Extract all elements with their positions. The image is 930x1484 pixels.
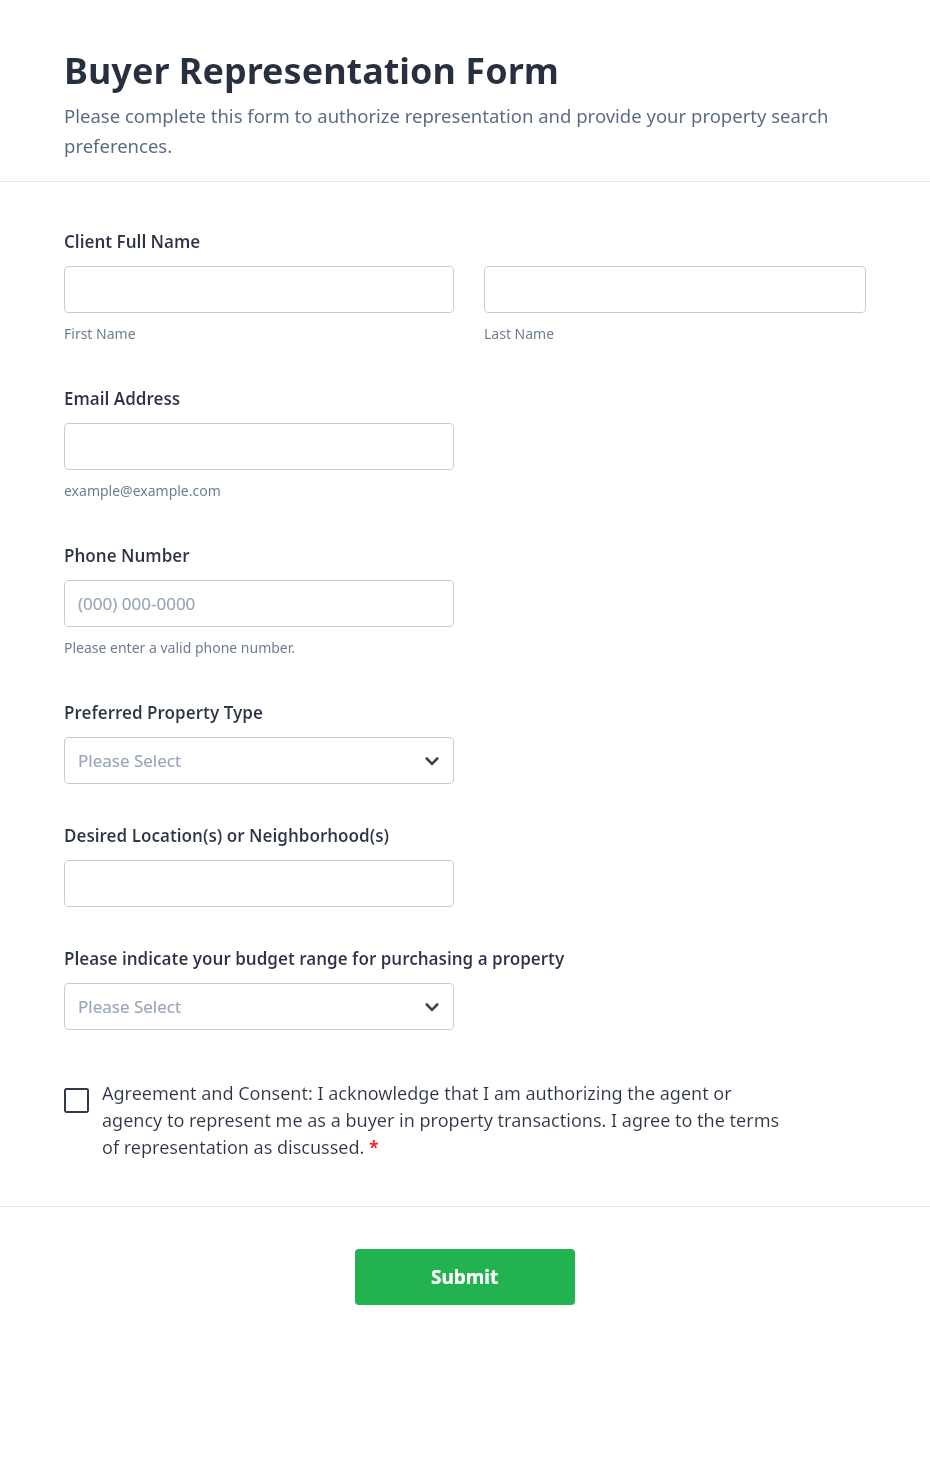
staticText: Please Select xyxy=(78,995,182,1018)
button[interactable]: Preferred Property Type xyxy=(64,737,454,784)
staticText: Phone Number xyxy=(64,544,190,567)
staticText: example@example.com xyxy=(64,481,221,500)
staticText: Please complete this form to authorize r… xyxy=(64,103,866,159)
staticText: Please indicate your budget range for pu… xyxy=(64,947,565,970)
button[interactable]: Agreement and Consent checkbox xyxy=(64,1081,792,1159)
button[interactable]: Last Name xyxy=(484,266,866,313)
staticText: Last Name xyxy=(484,324,555,343)
button[interactable]: Email Address xyxy=(64,423,454,470)
staticText: Client Full Name xyxy=(64,230,201,253)
staticText: Please enter a valid phone number. xyxy=(64,638,296,657)
staticText: Email Address xyxy=(64,387,181,410)
staticText: First Name xyxy=(64,324,136,343)
staticText: Desired Location(s) or Neighborhood(s) xyxy=(64,824,390,847)
button[interactable]: Phone Number xyxy=(64,580,454,627)
staticText: Preferred Property Type xyxy=(64,701,263,724)
other: Agreement and Consent checkbox xyxy=(64,1088,89,1113)
button[interactable]: Budget range xyxy=(64,983,454,1030)
button[interactable]: Desired Locations or Neighborhoods xyxy=(64,860,454,907)
staticText: Please Select xyxy=(78,749,182,772)
staticText: Submit xyxy=(431,1264,499,1290)
staticText: (000) 000-0000 xyxy=(78,592,196,615)
button[interactable]: First Name xyxy=(64,266,454,313)
staticText: Buyer Representation Form xyxy=(64,46,559,95)
staticText: Agreement and Consent: I acknowledge tha… xyxy=(102,1081,792,1159)
button[interactable]: Submit xyxy=(355,1249,575,1305)
